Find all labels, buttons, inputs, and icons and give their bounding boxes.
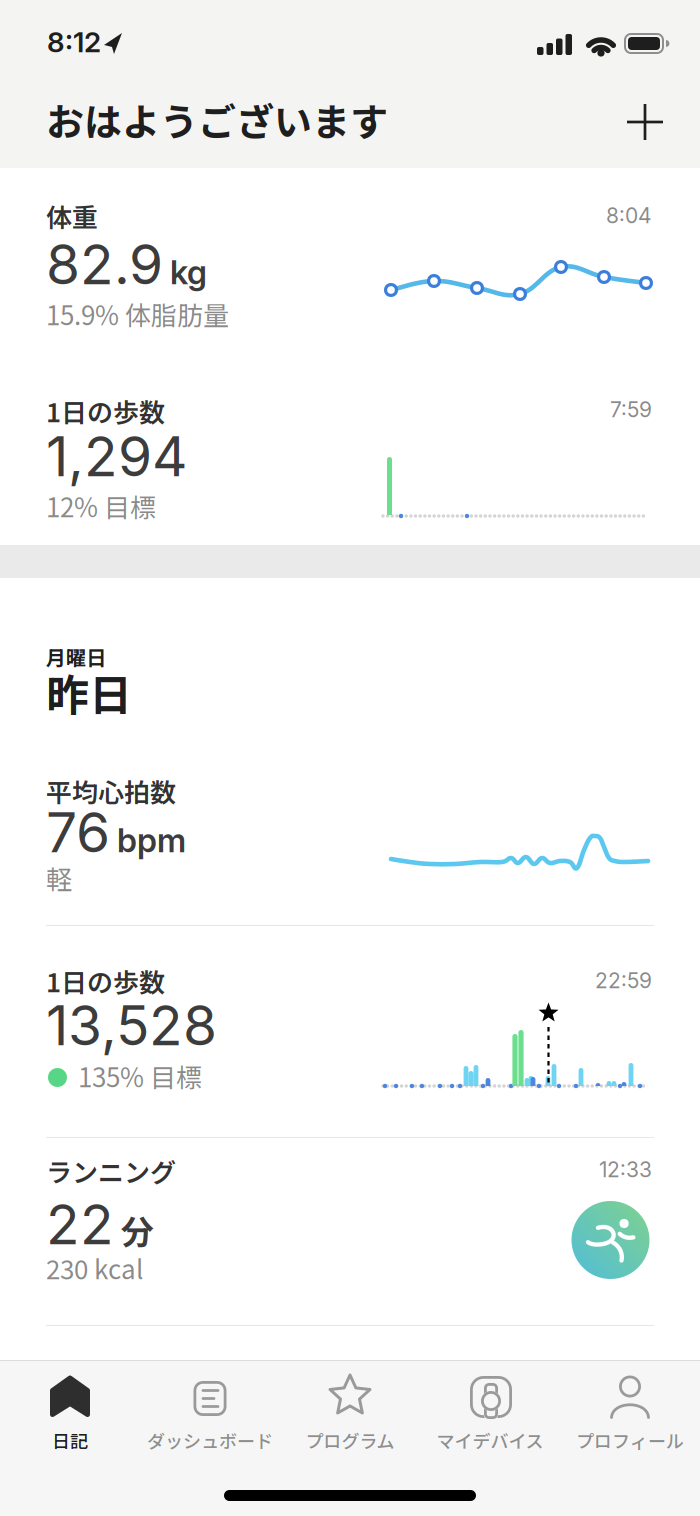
button[interactable]: プログラム (280, 1374, 420, 1466)
staticText: 12% 目標 (46, 487, 156, 525)
button[interactable]: ランニング (0, 1138, 700, 1325)
staticText: 7:59 (610, 397, 652, 422)
staticText: 平均心拍数 (46, 772, 176, 810)
staticText: 8:12 (47, 25, 101, 59)
staticText: 分 (121, 1206, 154, 1254)
button[interactable]: マイデバイス (420, 1374, 560, 1466)
staticText: 1,294 (46, 423, 188, 489)
staticText: 昨日 (46, 661, 132, 723)
staticText: 1日の歩数 (46, 392, 165, 430)
staticText: ランニング (46, 1152, 176, 1190)
button[interactable]: 1日の歩数 (0, 361, 700, 545)
staticText: 135% 目標 (78, 1057, 202, 1095)
staticText: ダッシュボード (147, 1427, 273, 1453)
staticText: 82.9 (46, 231, 163, 297)
staticText: マイデバイス (436, 1427, 543, 1453)
staticText: プログラム (305, 1427, 394, 1453)
staticText: 15.9% 体脂肪量 (46, 295, 229, 333)
button[interactable]: 平均心拍数 (0, 745, 700, 925)
staticText: プロフィール (576, 1427, 684, 1453)
staticText: kg (170, 252, 207, 292)
staticText: 月曜日 (46, 642, 106, 671)
staticText: 76 (46, 799, 110, 865)
button[interactable]: Add (621, 98, 669, 146)
staticText: 1日の歩数 (46, 962, 165, 1000)
staticText: 230 kcal (46, 1249, 143, 1287)
staticText: おはようございます (46, 92, 388, 147)
staticText: 22:59 (595, 968, 652, 993)
button[interactable]: ダッシュボード (140, 1374, 280, 1466)
button[interactable]: 日記 (0, 1374, 140, 1466)
staticText: 8:04 (606, 203, 652, 228)
button[interactable]: 体重 (0, 168, 700, 361)
staticText: 日記 (52, 1427, 88, 1453)
staticText: bpm (117, 820, 186, 860)
staticText: 13,528 (46, 992, 217, 1058)
staticText: 軽 (46, 859, 72, 897)
staticText: 体重 (46, 197, 98, 235)
staticText: 12:33 (599, 1157, 652, 1182)
staticText: 22 (46, 1191, 114, 1257)
button[interactable]: 1日の歩数 (0, 926, 700, 1137)
button[interactable]: プロフィール (560, 1374, 700, 1466)
